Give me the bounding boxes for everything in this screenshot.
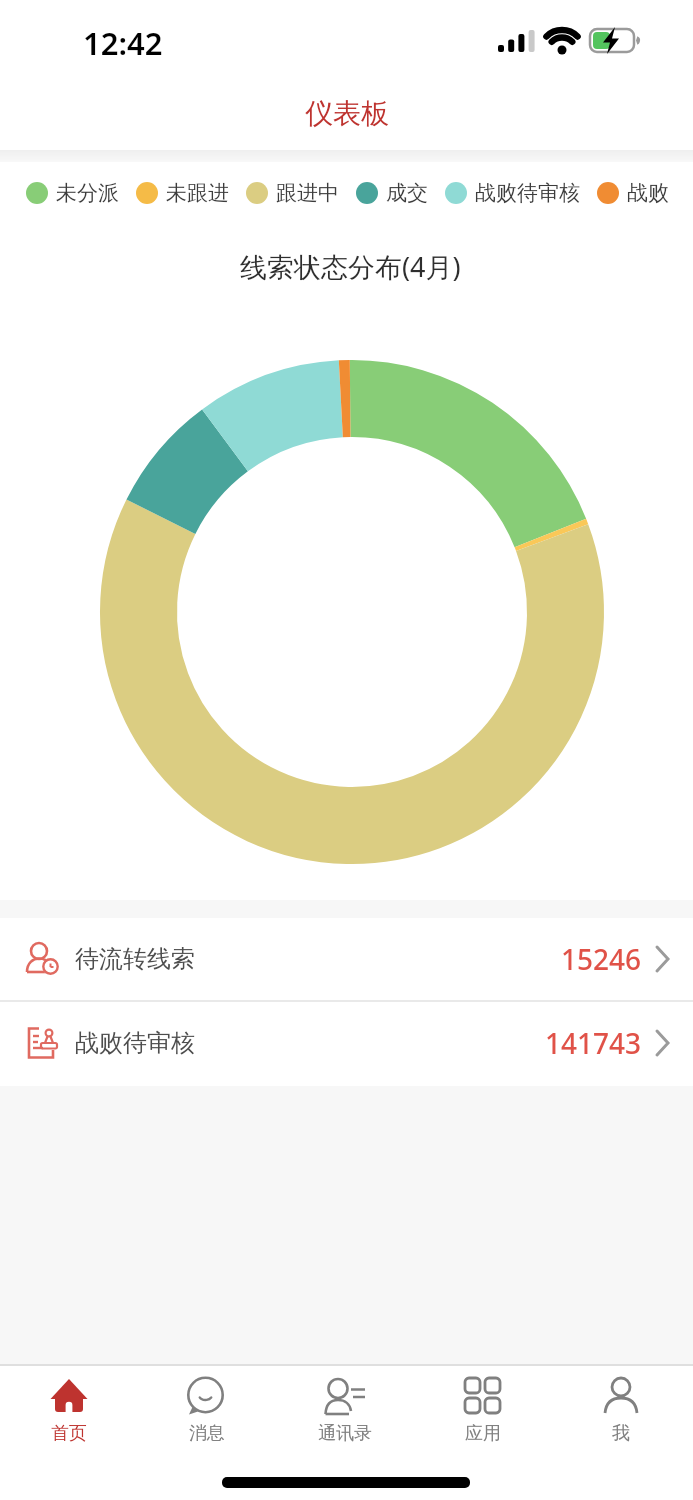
button[interactable]: 待流转线索 bbox=[0, 918, 693, 1000]
staticText: 未跟进 bbox=[166, 180, 229, 206]
staticText: 跟进中 bbox=[276, 180, 339, 206]
staticText: 通讯录 bbox=[318, 1422, 372, 1445]
button[interactable]: 我 bbox=[552, 1366, 690, 1500]
staticText: 我 bbox=[612, 1422, 630, 1445]
staticText: 消息 bbox=[189, 1422, 225, 1445]
staticText: 应用 bbox=[465, 1422, 501, 1445]
button[interactable]: 应用 bbox=[414, 1366, 552, 1500]
staticText: 战败待审核 bbox=[475, 180, 580, 206]
staticText: 战败 bbox=[627, 180, 669, 206]
staticText: 未分派 bbox=[56, 180, 119, 206]
staticText: 仪表板 bbox=[305, 96, 389, 131]
staticText: 141743 bbox=[545, 1024, 642, 1062]
button[interactable]: 通讯录 bbox=[276, 1366, 414, 1500]
staticText: 战败待审核 bbox=[75, 1028, 195, 1058]
button[interactable]: 消息 bbox=[138, 1366, 276, 1500]
button[interactable]: 首页 bbox=[0, 1366, 138, 1500]
staticText: 首页 bbox=[51, 1422, 87, 1445]
button[interactable]: 战败待审核 bbox=[0, 1002, 693, 1084]
staticText: 线索状态分布(4月) bbox=[240, 248, 461, 285]
staticText: 待流转线索 bbox=[75, 944, 195, 974]
staticText: 成交 bbox=[386, 180, 428, 206]
staticText: 15246 bbox=[561, 940, 642, 978]
staticText: 12:42 bbox=[83, 22, 163, 64]
